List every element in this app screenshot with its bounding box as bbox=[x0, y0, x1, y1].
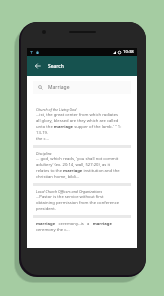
button[interactable]: Back bbox=[32, 60, 44, 72]
staticText: obtaining permission from the conference bbox=[36, 200, 120, 206]
staticText: president. bbox=[36, 206, 56, 212]
button[interactable]: Church of the Living God bbox=[33, 104, 131, 145]
staticText: ...Pastor is the service without first bbox=[36, 194, 104, 200]
staticText: Church of the Living God bbox=[36, 107, 77, 112]
staticText: Search bbox=[48, 63, 64, 70]
staticText: 10:38 bbox=[123, 49, 134, 55]
staticText: Discipline bbox=[36, 151, 52, 156]
staticText: the c... bbox=[36, 136, 49, 142]
staticText: Marriage bbox=[48, 84, 70, 91]
button[interactable]: marriage ceremony--is a marriage bbox=[33, 218, 131, 236]
button[interactable]: Local Church Officers and Organizations bbox=[33, 186, 131, 215]
button[interactable]: Discipline bbox=[33, 148, 131, 183]
staticText: ...ist, the great center from which radi… bbox=[36, 112, 119, 118]
staticText: marriage ceremony--is a marriage bbox=[36, 221, 112, 227]
staticText: all glory, blessed are they which are ca… bbox=[36, 118, 119, 124]
staticText: christian home, bibli... bbox=[36, 174, 80, 180]
staticText: ceremony the c... bbox=[36, 227, 70, 233]
staticText: 13-19. bbox=[36, 130, 49, 136]
staticText: unto the marriage supper of the lamb.' '… bbox=[36, 124, 122, 130]
staticText: relates to the marriage institution and … bbox=[36, 168, 120, 174]
staticText: Local Church Officers and Organizations bbox=[36, 189, 103, 194]
staticText: ... god, which reads, 'you shall not com… bbox=[36, 156, 119, 162]
button[interactable]: Marriage bbox=[33, 81, 131, 94]
staticText: adultery' (ex. 20:14, wall, 527:20), as … bbox=[36, 162, 111, 168]
